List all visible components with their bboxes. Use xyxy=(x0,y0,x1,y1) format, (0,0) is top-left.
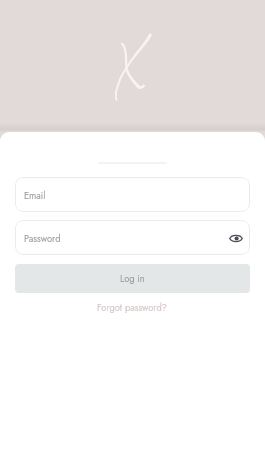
staticText: Forgot password? xyxy=(97,301,168,314)
button[interactable]: Password xyxy=(15,220,250,255)
staticText: Log in xyxy=(120,272,145,285)
staticText: Password xyxy=(24,232,61,245)
button[interactable]: Show password xyxy=(226,228,246,248)
button[interactable]: Log in xyxy=(15,264,250,293)
button[interactable]: Email xyxy=(15,177,250,212)
button[interactable]: Forgot password? xyxy=(0,296,265,316)
staticText: Email xyxy=(24,189,46,202)
